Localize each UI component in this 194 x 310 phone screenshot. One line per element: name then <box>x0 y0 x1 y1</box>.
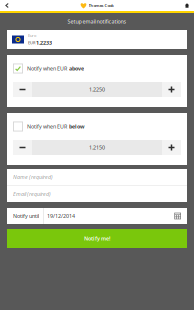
staticText: Notify until <box>13 212 39 220</box>
staticText: 1.2150 <box>89 144 105 151</box>
staticText: Notify when EUR <box>27 65 67 72</box>
button[interactable]: Home <box>181 0 193 11</box>
staticText: above <box>69 65 84 72</box>
button[interactable]: Notify until <box>7 208 187 224</box>
button[interactable]: Decrease <box>13 82 32 97</box>
staticText: Notify me! <box>84 235 110 242</box>
button[interactable]: Email (required) <box>7 186 187 202</box>
staticText: 1.2233 <box>36 39 52 46</box>
button[interactable]: Notify when EUR <box>7 55 187 82</box>
staticText: below <box>69 123 85 130</box>
staticText: Notify when EUR <box>27 123 67 130</box>
staticText: Euro <box>28 33 36 38</box>
button[interactable]: Decrease <box>13 140 32 155</box>
staticText: Name (required) <box>13 173 53 181</box>
staticText: Email (required) <box>13 190 51 198</box>
staticText: EUR <box>28 40 35 45</box>
staticText: Setup email notifications <box>67 18 126 25</box>
button[interactable]: Increase <box>162 82 181 97</box>
button[interactable]: Increase <box>162 140 181 155</box>
button[interactable]: Notify me! <box>7 229 187 248</box>
button[interactable]: Name (required) <box>7 169 187 185</box>
button[interactable]: Back <box>1 0 13 11</box>
staticText: Thomas Cook <box>88 3 113 8</box>
staticText: 19/12/2014 <box>47 212 75 220</box>
button[interactable]: Notify when EUR <box>7 113 187 140</box>
staticText: 1.2250 <box>89 86 105 93</box>
